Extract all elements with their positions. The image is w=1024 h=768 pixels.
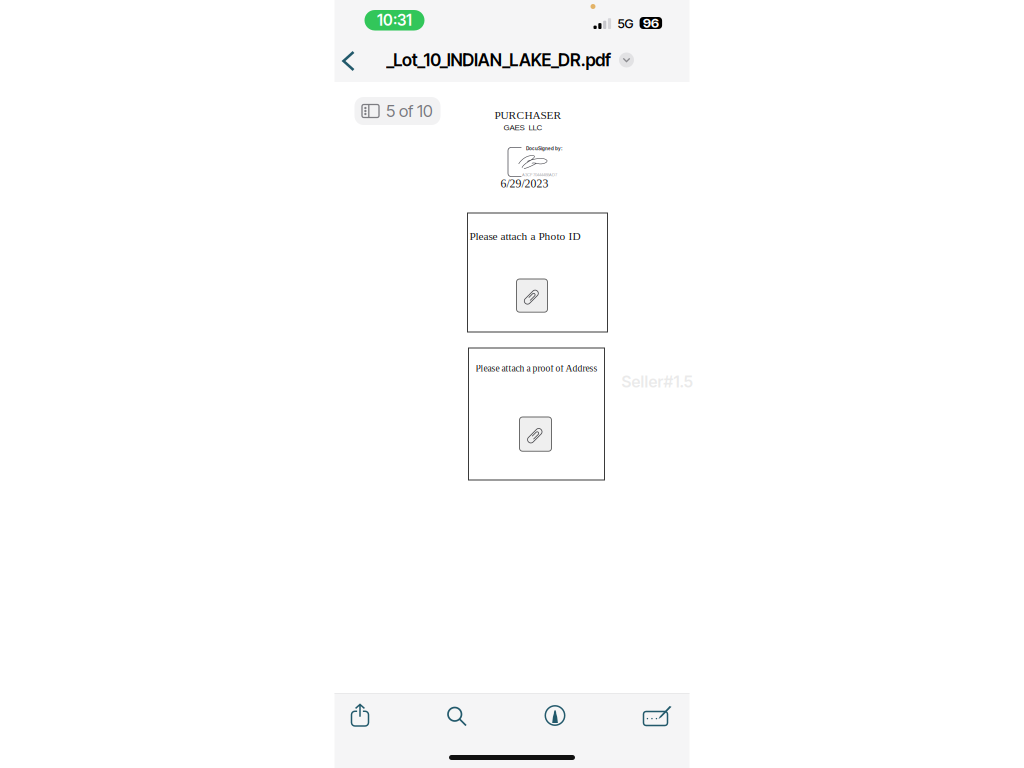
button[interactable]: Attach a file bbox=[519, 417, 551, 451]
staticText: DocuSigned by: bbox=[526, 146, 563, 151]
staticText: 96 bbox=[643, 15, 659, 31]
staticText: PURCHASER bbox=[494, 109, 561, 121]
staticText: GAES LLC bbox=[503, 123, 542, 132]
button[interactable]: Search bbox=[434, 694, 479, 738]
staticText: Seller#1.5 bbox=[621, 372, 693, 391]
staticText: _Lot_10_INDIAN_LAKE_DR.pdf bbox=[386, 49, 611, 70]
staticText: Please attach a Photo ID bbox=[469, 230, 580, 242]
staticText: 10:31 bbox=[377, 11, 412, 30]
staticText: Please attach a proof of Address bbox=[475, 363, 597, 374]
button[interactable]: Markup bbox=[532, 693, 577, 737]
button[interactable]: Back bbox=[334, 43, 362, 79]
staticText: 5 of 10 bbox=[386, 101, 433, 121]
staticText: A3CF70444488AD7 bbox=[522, 172, 557, 177]
button[interactable]: 5 of 10 bbox=[354, 97, 440, 125]
button[interactable]: Share bbox=[337, 693, 382, 737]
button[interactable]: Fill and Sign bbox=[635, 693, 680, 737]
staticText: 5G bbox=[618, 16, 634, 31]
button[interactable]: Document options bbox=[615, 49, 637, 71]
button[interactable]: Attach a file bbox=[516, 279, 547, 312]
staticText: 6/29/2023 bbox=[500, 177, 548, 190]
